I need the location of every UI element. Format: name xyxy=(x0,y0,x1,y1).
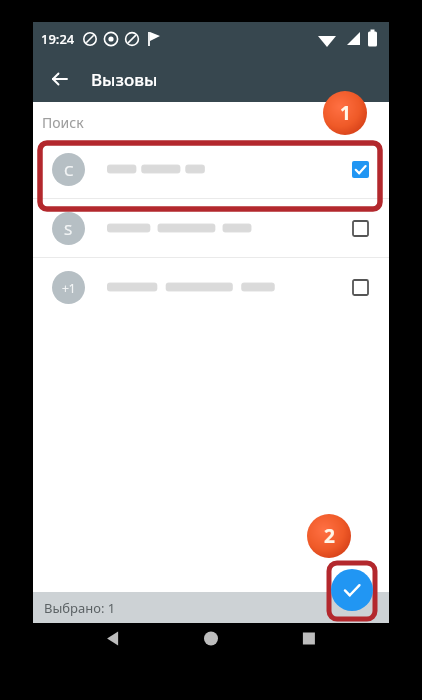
button[interactable]: C xyxy=(33,140,389,198)
staticText: S xyxy=(64,219,73,239)
button[interactable]: Назад xyxy=(43,62,77,96)
staticText: C xyxy=(64,160,74,180)
staticText: +1 xyxy=(62,280,76,296)
staticText: Вызовы xyxy=(91,68,158,91)
button[interactable]: Поиск xyxy=(33,102,389,140)
staticText: 19:24 xyxy=(41,30,75,48)
staticText: 2 xyxy=(324,523,335,549)
button[interactable]: Не выбрано xyxy=(340,267,380,307)
button[interactable]: +1 xyxy=(33,258,389,316)
button[interactable]: S xyxy=(33,199,389,257)
button[interactable]: Не выбрано xyxy=(340,208,380,248)
staticText: Выбрано: 1 xyxy=(44,599,116,617)
staticText: 1 xyxy=(340,100,351,126)
button[interactable]: Выбрано xyxy=(340,149,380,189)
staticText: Поиск xyxy=(42,113,84,132)
button[interactable]: Готово xyxy=(331,569,373,611)
